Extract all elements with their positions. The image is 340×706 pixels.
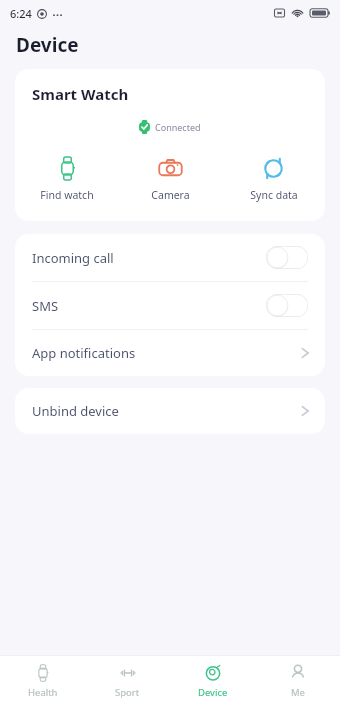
staticText: Unbind device [32, 402, 119, 420]
staticText: Sport [115, 686, 140, 699]
button[interactable]: Incoming call toggle [266, 246, 308, 269]
staticText: 6:24 [10, 6, 32, 21]
staticText: SMS [32, 297, 59, 315]
button[interactable]: SMS toggle [266, 294, 308, 317]
staticText: Me [291, 686, 305, 699]
button[interactable]: Incoming call [15, 234, 325, 281]
staticText: Health [28, 686, 58, 699]
staticText: Incoming call [32, 249, 114, 267]
staticText: Device [16, 32, 79, 58]
staticText: Sync data [250, 188, 298, 202]
button[interactable]: Me [255, 656, 340, 706]
button[interactable]: App notifications [15, 330, 325, 376]
button[interactable]: Camera [119, 154, 222, 204]
button[interactable]: Sport [85, 656, 170, 706]
button[interactable]: SMS [15, 282, 325, 329]
staticText: Device [198, 686, 228, 699]
staticText: App notifications [32, 344, 136, 362]
button[interactable]: Health [0, 656, 85, 706]
staticText: Camera [151, 188, 190, 202]
staticText: Connected [155, 121, 201, 133]
staticText: Find watch [40, 188, 94, 202]
button[interactable]: Unbind device [15, 388, 325, 434]
button[interactable]: Sync data [222, 154, 325, 204]
staticText: Smart Watch [32, 84, 129, 104]
button[interactable]: Find watch [15, 154, 119, 204]
button[interactable]: Device [170, 656, 255, 706]
